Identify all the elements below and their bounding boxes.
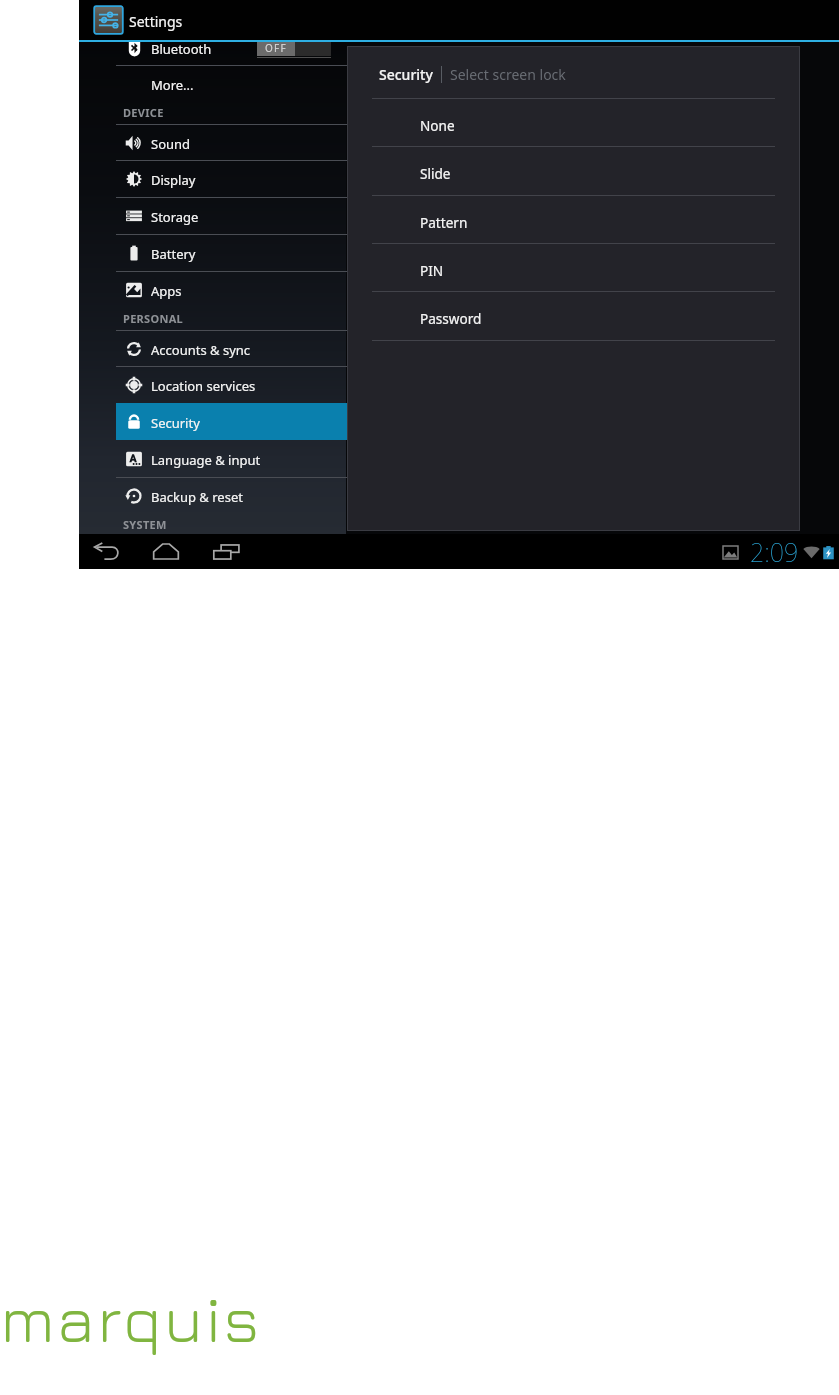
staticText: marquis <box>0 1280 262 1356</box>
staticText: Storage <box>151 208 199 226</box>
button[interactable]: Display <box>116 160 383 197</box>
staticText: Accounts & sync <box>151 341 251 359</box>
button[interactable]: Bluetooth <box>79 42 346 65</box>
staticText: PIN <box>420 261 444 280</box>
button[interactable]: Home <box>144 534 188 569</box>
button[interactable]: Storage <box>116 197 383 234</box>
button[interactable]: Screenshot <box>718 540 742 564</box>
staticText: PERSONAL <box>123 311 184 326</box>
staticText: Security <box>151 414 200 432</box>
staticText: Battery <box>151 245 196 263</box>
button[interactable]: Password <box>347 291 800 339</box>
staticText: More... <box>151 76 194 94</box>
button[interactable]: Apps <box>116 271 383 308</box>
button[interactable]: Settings <box>79 0 839 42</box>
staticText: Select screen lock <box>450 65 566 84</box>
staticText: DEVICE <box>123 105 164 120</box>
button[interactable]: Slide <box>347 146 800 194</box>
staticText: SYSTEM <box>123 517 167 532</box>
staticText: Apps <box>151 282 182 300</box>
button[interactable]: Recent apps <box>204 534 248 569</box>
button[interactable]: None <box>347 98 800 146</box>
button[interactable]: Battery <box>116 234 383 271</box>
staticText: Language & input <box>151 451 261 469</box>
button[interactable]: PIN <box>347 243 800 291</box>
button[interactable]: Accounts & sync <box>116 330 383 367</box>
staticText: Security <box>379 65 433 84</box>
staticText: None <box>420 116 455 135</box>
button[interactable]: Security <box>116 403 383 440</box>
staticText: OFF <box>265 42 287 55</box>
staticText: Sound <box>151 135 191 153</box>
staticText: Location services <box>151 377 256 395</box>
staticText: Settings <box>129 12 183 31</box>
button[interactable]: Back <box>85 534 129 569</box>
button[interactable]: More... <box>116 65 383 102</box>
staticText: Password <box>420 309 482 328</box>
staticText: Bluetooth <box>151 42 212 58</box>
staticText: Slide <box>420 164 451 183</box>
button[interactable]: Location services <box>116 366 383 403</box>
button[interactable]: Backup & reset <box>116 477 383 514</box>
staticText: Pattern <box>420 213 468 232</box>
staticText: 2:09 <box>750 535 799 569</box>
button[interactable]: Sound <box>116 124 383 161</box>
button[interactable]: Pattern <box>347 195 800 243</box>
staticText: Display <box>151 171 196 189</box>
button[interactable]: Language & input <box>116 440 383 477</box>
staticText: Backup & reset <box>151 488 243 506</box>
